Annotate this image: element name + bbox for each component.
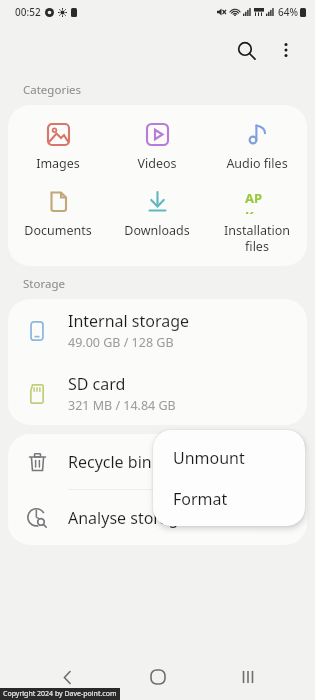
staticText: 00:52 [15, 5, 41, 19]
button[interactable]: Internal storage [8, 299, 307, 362]
staticText: Categories [23, 82, 82, 98]
staticText: Analyse storage [68, 507, 188, 529]
button[interactable]: Downloads [107, 184, 207, 241]
button[interactable]: APK [207, 184, 307, 256]
button[interactable]: Format [153, 478, 305, 519]
button[interactable]: Search [225, 29, 267, 71]
staticText: Videos [137, 155, 177, 172]
button[interactable]: Audio files [207, 117, 307, 174]
staticText: Audio files [226, 155, 288, 172]
button[interactable]: More options [267, 31, 305, 69]
staticText: Recycle bin [68, 451, 152, 473]
button[interactable]: Videos [107, 117, 207, 174]
staticText: SD card [68, 373, 126, 395]
button[interactable]: Unmount [153, 437, 305, 478]
staticText: Installation files [224, 222, 290, 254]
staticText: Downloads [124, 222, 190, 239]
staticText: Storage [23, 276, 65, 292]
staticText: Documents [24, 222, 92, 239]
button[interactable]: Home [134, 654, 182, 700]
button[interactable]: Analyse storage [8, 490, 307, 545]
staticText: Unmount [173, 447, 245, 469]
staticText: Copyright 2024 by Dave-point.com [3, 689, 117, 699]
staticText: APK [245, 189, 270, 214]
button[interactable]: Recents [224, 654, 272, 700]
staticText: 321 MB / 14.84 GB [68, 397, 176, 414]
button[interactable]: SD card [8, 362, 307, 425]
staticText: Internal storage [68, 310, 190, 332]
staticText: 64% [278, 5, 298, 19]
button[interactable]: Images [8, 117, 107, 174]
button[interactable]: Documents [8, 184, 107, 241]
button[interactable]: Back [43, 654, 91, 700]
staticText: Images [36, 155, 80, 172]
staticText: 49.00 GB / 128 GB [68, 334, 174, 351]
button[interactable]: Recycle bin [8, 434, 307, 489]
staticText: Format [173, 488, 228, 510]
